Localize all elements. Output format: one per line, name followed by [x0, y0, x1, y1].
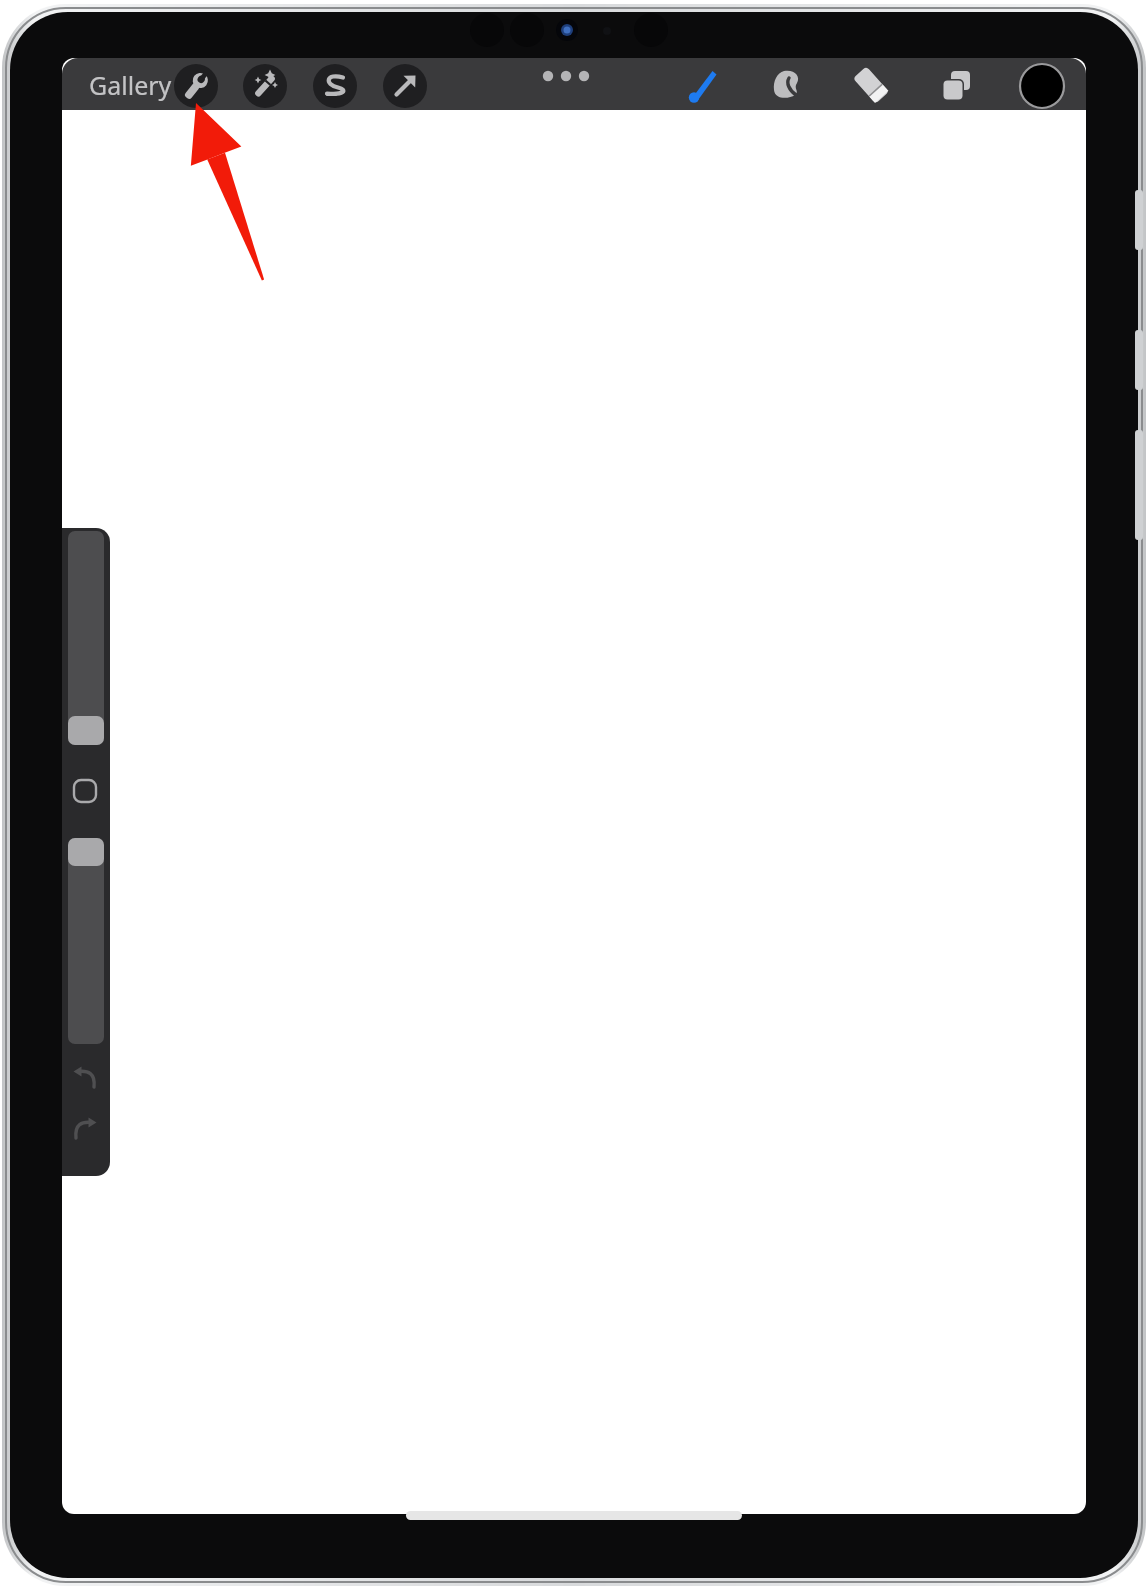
- button[interactable]: Paint brush: [679, 62, 727, 110]
- button[interactable]: Redo: [66, 1106, 108, 1154]
- staticText: Gallery: [89, 68, 172, 102]
- button[interactable]: Smudge: [763, 62, 811, 110]
- button[interactable]: Colour: [1018, 62, 1066, 110]
- button[interactable]: Brush size: [66, 529, 108, 747]
- button[interactable]: Adjustments: [243, 64, 287, 108]
- button[interactable]: Transform: [383, 64, 427, 108]
- button[interactable]: Layers: [931, 62, 979, 110]
- button[interactable]: Brush settings: [70, 774, 102, 808]
- button[interactable]: Gallery: [80, 62, 180, 108]
- button[interactable]: More options: [540, 56, 594, 98]
- button[interactable]: Eraser: [847, 62, 895, 110]
- button[interactable]: Brush opacity: [66, 836, 108, 1046]
- button[interactable]: Selection: [313, 64, 357, 108]
- button[interactable]: Undo: [66, 1055, 108, 1103]
- button[interactable]: Actions: [174, 64, 218, 108]
